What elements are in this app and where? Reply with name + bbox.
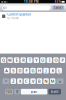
staticText: P <box>61 57 63 63</box>
staticText: W <box>8 57 12 63</box>
staticText: 10:08 PM <box>24 0 38 3</box>
button[interactable]: Y <box>34 57 39 63</box>
button[interactable]: D <box>17 68 23 73</box>
button[interactable]: K <box>50 68 55 73</box>
staticText: H <box>38 68 41 73</box>
button[interactable]: J <box>43 68 49 73</box>
staticText: 123 <box>6 90 12 93</box>
staticText: U <box>41 57 44 63</box>
staticText: Search <box>51 90 59 93</box>
button[interactable]: N <box>43 78 49 84</box>
button[interactable]: Current Location <box>0 12 66 21</box>
button[interactable]: U <box>40 57 45 63</box>
staticText: C <box>25 78 28 84</box>
button[interactable]: x <box>56 78 63 84</box>
button[interactable]: I <box>47 57 52 63</box>
staticText: Q <box>2 57 5 63</box>
button[interactable]: C <box>24 78 29 84</box>
button[interactable]: @ <box>14 89 20 94</box>
button[interactable]: O <box>53 57 59 63</box>
staticText: R <box>22 57 24 63</box>
button[interactable]: E <box>14 57 19 63</box>
staticText: K <box>52 68 54 73</box>
button[interactable]: T <box>27 57 32 63</box>
staticText: L <box>58 68 60 73</box>
staticText: to Home <box>7 16 19 20</box>
button[interactable]: V <box>30 78 36 84</box>
button[interactable]: Search <box>48 89 61 94</box>
staticText: Current Location <box>7 13 31 16</box>
button[interactable]: G <box>30 68 36 73</box>
button[interactable]: M <box>50 78 55 84</box>
staticText: E <box>16 57 18 63</box>
button[interactable]: S <box>11 68 16 73</box>
staticText: 84% <box>55 0 61 3</box>
staticText: A <box>5 68 8 73</box>
staticText: AT&T <box>1 0 7 3</box>
staticText: Y <box>35 57 37 63</box>
button[interactable]: space <box>21 89 47 94</box>
staticText: I <box>49 57 50 63</box>
staticText: ^ <box>5 78 7 84</box>
button[interactable]: ^ <box>2 78 9 84</box>
staticText: x <box>59 78 61 84</box>
staticText: @ <box>16 90 18 93</box>
staticText: G <box>31 68 34 73</box>
staticText: Z <box>12 78 14 84</box>
button[interactable]: 123 <box>5 89 13 94</box>
button[interactable]: Cancel <box>52 5 64 10</box>
button[interactable]: P <box>60 57 65 63</box>
button[interactable]: X <box>17 78 23 84</box>
button[interactable]: H <box>37 68 42 73</box>
staticText: O <box>54 57 57 63</box>
staticText: N <box>45 78 48 84</box>
staticText: B <box>38 78 41 84</box>
button[interactable]: F <box>24 68 29 73</box>
staticText: F <box>25 68 27 73</box>
staticText: J <box>46 68 47 73</box>
staticText: X <box>19 78 21 84</box>
staticText: space <box>30 90 37 93</box>
staticText: T <box>29 57 31 63</box>
staticText: M <box>51 78 55 84</box>
button[interactable]: W <box>7 57 13 63</box>
staticText: D <box>18 68 21 73</box>
button[interactable]: L <box>56 68 62 73</box>
button[interactable]: Q <box>1 57 6 63</box>
button[interactable]: B <box>37 78 42 84</box>
staticText: Cancel <box>54 6 63 9</box>
staticText: V <box>32 78 34 84</box>
staticText: S <box>12 68 14 73</box>
button[interactable]: Z <box>11 78 16 84</box>
button[interactable]: A <box>4 68 9 73</box>
button[interactable]: R <box>20 57 26 63</box>
